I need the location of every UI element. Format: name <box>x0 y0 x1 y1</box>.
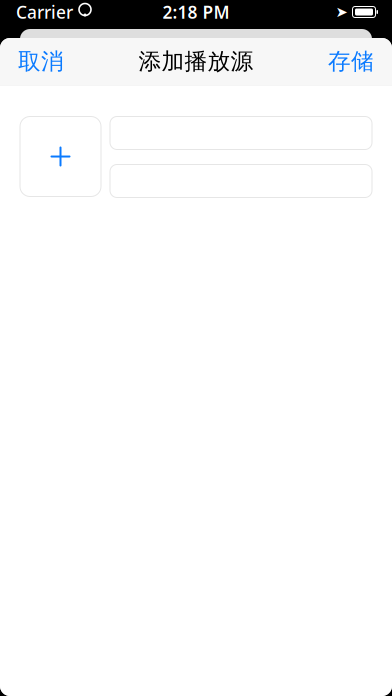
button[interactable]: 地址 <box>110 164 372 197</box>
staticText: 2:18 PM <box>162 0 229 23</box>
button[interactable]: 存储 <box>320 38 382 85</box>
staticText: 存储 <box>328 48 374 75</box>
button[interactable]: 名称 <box>110 116 372 149</box>
button[interactable]: 取消 <box>10 38 72 85</box>
button[interactable]: 添加图片 <box>20 116 101 196</box>
staticText: ➤ <box>335 4 347 20</box>
staticText: Carrier <box>16 0 73 23</box>
staticText: 添加播放源 <box>138 48 253 75</box>
staticText: 取消 <box>18 48 64 75</box>
